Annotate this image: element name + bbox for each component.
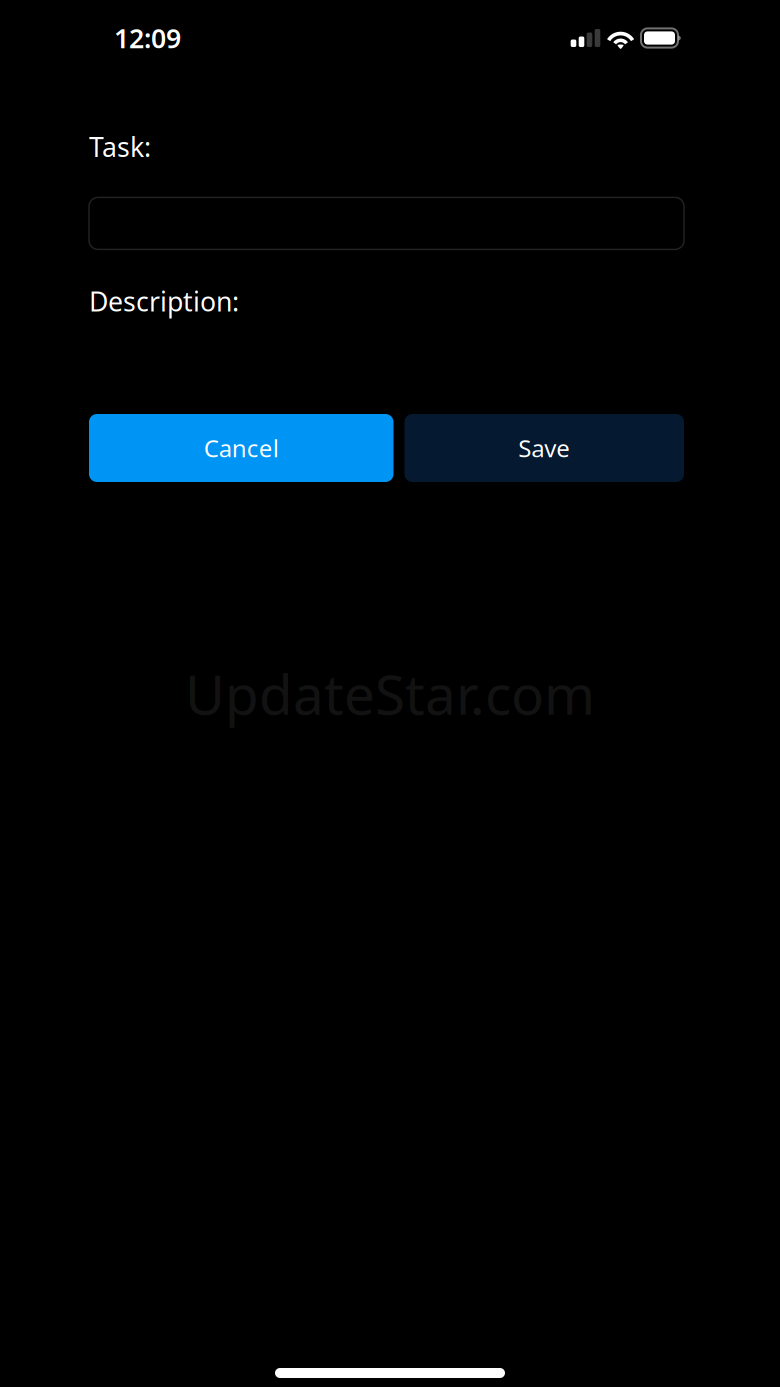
- button[interactable]: Task: [89, 197, 684, 249]
- staticText: Cancel: [204, 432, 279, 464]
- staticText: 12:09: [114, 20, 181, 56]
- button[interactable]: Save: [404, 414, 684, 482]
- staticText: UpdateStar.com: [185, 657, 595, 730]
- staticText: Description:: [89, 283, 239, 319]
- staticText: Save: [518, 432, 570, 464]
- staticText: Task:: [89, 129, 151, 164]
- button[interactable]: Cancel: [89, 414, 393, 482]
